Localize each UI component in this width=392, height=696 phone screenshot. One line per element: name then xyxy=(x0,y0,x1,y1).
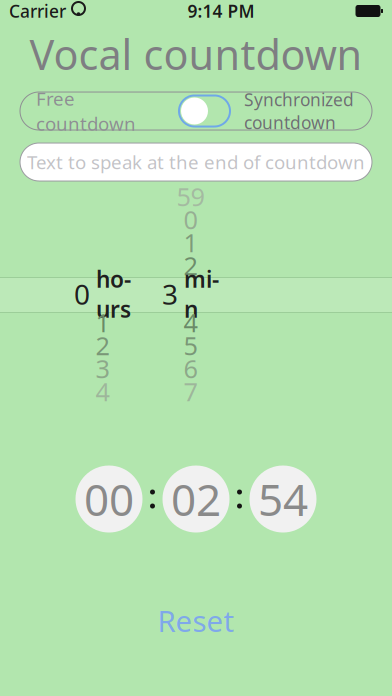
staticText: 1 xyxy=(183,226,197,259)
staticText: Synchronized xyxy=(244,88,354,111)
staticText: 6 xyxy=(183,352,197,385)
staticText: 3 xyxy=(95,352,109,385)
staticText: Vocal countdown xyxy=(29,27,362,81)
staticText: 0 xyxy=(74,275,90,313)
staticText: 00 xyxy=(84,470,134,528)
staticText: min xyxy=(184,264,219,324)
button[interactable]: Reset xyxy=(135,593,256,648)
button[interactable]: Text to speak at the end of countdown xyxy=(20,143,372,181)
staticText: Reset xyxy=(157,601,234,640)
staticText: 4 xyxy=(183,306,197,339)
staticText: 7 xyxy=(183,375,197,408)
staticText: 54 xyxy=(258,470,308,528)
staticText: 02 xyxy=(171,470,221,528)
staticText: 5 xyxy=(183,329,197,362)
staticText: hours xyxy=(96,264,131,324)
staticText: 2 xyxy=(183,249,197,282)
staticText: 59 xyxy=(176,180,204,213)
staticText: 9:14 PM xyxy=(187,0,254,22)
staticText: Text to speak at the end of countdown xyxy=(27,150,365,174)
staticText: 3 xyxy=(162,275,178,313)
staticText: 2 xyxy=(95,329,109,362)
staticText: 0 xyxy=(183,203,197,236)
staticText: Carrier xyxy=(9,0,66,22)
staticText: countdown xyxy=(244,111,336,134)
staticText: 1 xyxy=(95,306,109,339)
staticText: 4 xyxy=(95,375,109,408)
button[interactable]: Free countdown xyxy=(20,92,372,130)
staticText: Free countdown xyxy=(36,86,136,136)
